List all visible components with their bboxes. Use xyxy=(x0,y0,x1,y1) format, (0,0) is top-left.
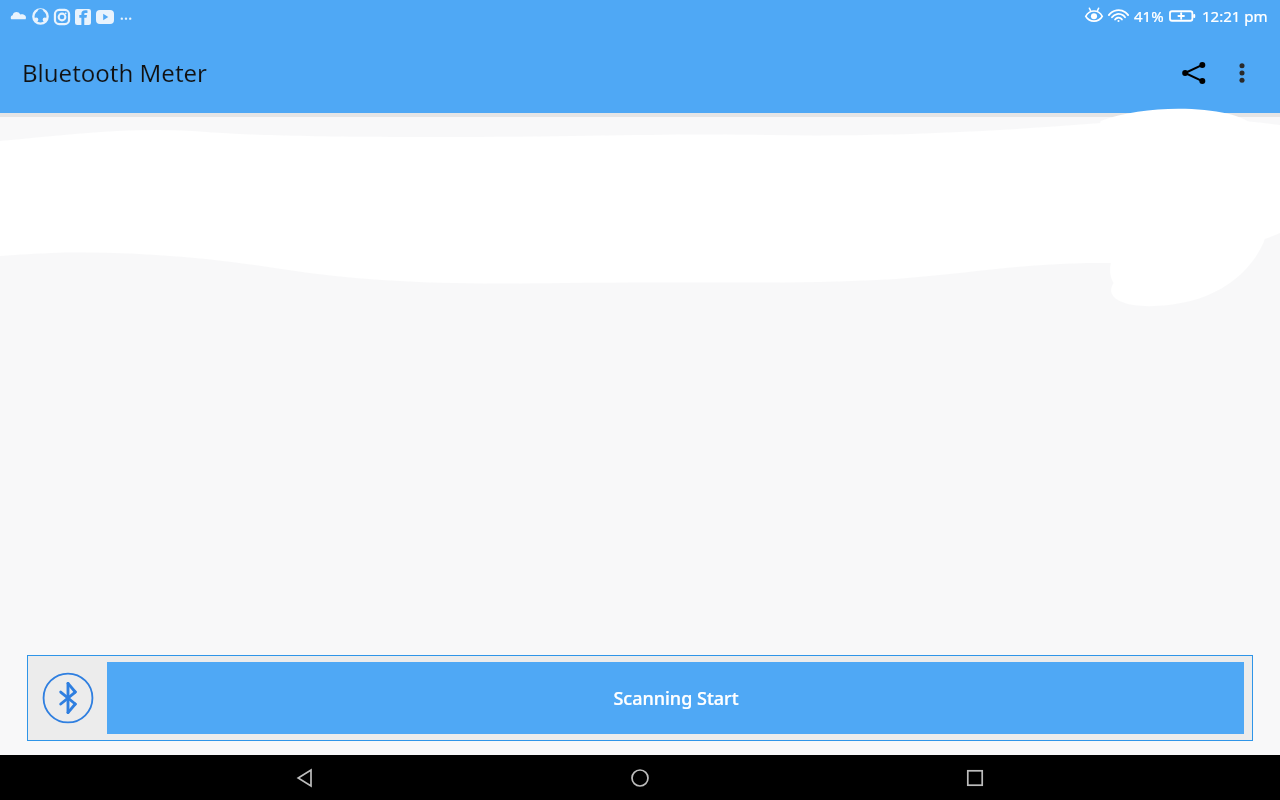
button[interactable]: Home xyxy=(610,755,670,800)
staticText: 41% xyxy=(1134,6,1164,26)
button[interactable]: Scanning Start xyxy=(107,662,1244,734)
button[interactable]: Back xyxy=(275,755,335,800)
button[interactable]: Recent apps xyxy=(945,755,1005,800)
staticText: Scanning Start xyxy=(613,686,739,711)
button[interactable]: Share xyxy=(1170,49,1218,97)
staticText: 12:21 pm xyxy=(1202,6,1268,26)
staticText: Bluetooth Meter xyxy=(22,56,208,89)
button[interactable]: Bluetooth xyxy=(39,669,97,727)
button[interactable]: More options xyxy=(1218,49,1266,97)
